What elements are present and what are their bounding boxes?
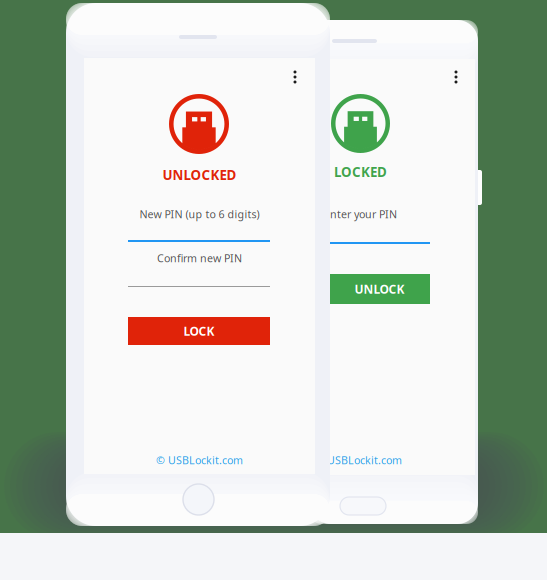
staticText: UNLOCK [354, 281, 404, 297]
button[interactable]: USBLockit.com [314, 453, 415, 467]
staticText: LOCK [183, 323, 214, 339]
button[interactable]: LOCK [128, 317, 270, 345]
staticText: Confirm new PIN [157, 251, 242, 265]
staticText: New PIN (up to 6 digits) [139, 207, 259, 221]
staticText: © USBLockit.com [156, 453, 243, 467]
staticText: Enter your PIN [324, 207, 397, 221]
staticText: USBLockit.com [327, 453, 402, 467]
staticText: UNLOCKED [162, 166, 236, 184]
button[interactable]: UNLOCK [329, 274, 430, 304]
button[interactable]: More options [444, 64, 468, 90]
button[interactable]: More options [283, 64, 307, 90]
button[interactable]: © USBLockit.com [84, 453, 315, 467]
staticText: LOCKED [334, 163, 387, 181]
